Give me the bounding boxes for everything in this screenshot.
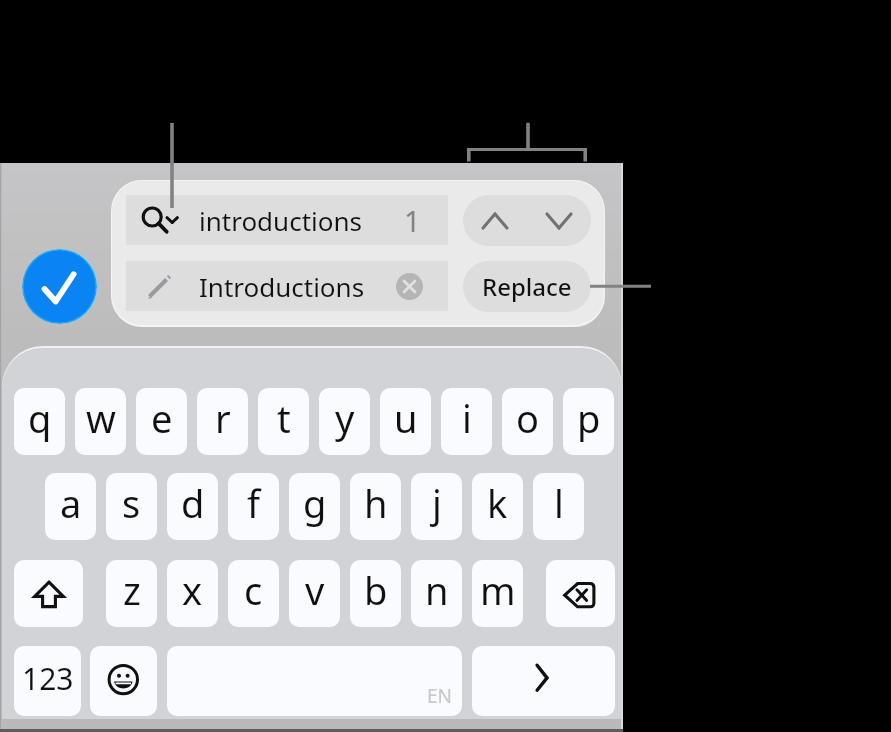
staticText: m	[480, 564, 516, 616]
button[interactable]: g	[289, 473, 340, 540]
staticText: b	[364, 564, 388, 616]
button[interactable]: Emoji	[90, 646, 157, 716]
button[interactable]: k	[472, 473, 523, 540]
button[interactable]: l	[533, 473, 584, 540]
staticText: w	[86, 392, 116, 444]
staticText: e	[151, 392, 173, 444]
button[interactable]: Next	[527, 195, 591, 246]
staticText: q	[28, 392, 52, 444]
staticText: u	[394, 392, 418, 444]
staticText: j	[432, 477, 442, 529]
button[interactable]: f	[228, 473, 279, 540]
staticText: k	[487, 477, 508, 529]
button[interactable]: r	[197, 388, 248, 455]
staticText: EN	[427, 683, 453, 709]
button[interactable]: o	[502, 388, 553, 455]
button[interactable]: b	[350, 560, 401, 627]
button[interactable]: Shift	[14, 560, 83, 627]
staticText: r	[215, 392, 231, 444]
staticText: n	[425, 564, 449, 616]
staticText: x	[182, 564, 203, 616]
button[interactable]: j	[411, 473, 462, 540]
button[interactable]: c	[228, 560, 279, 627]
button[interactable]: z	[106, 560, 157, 627]
staticText: d	[181, 477, 205, 529]
staticText: y	[335, 392, 355, 444]
button[interactable]: y	[319, 388, 370, 455]
button[interactable]: Previous	[463, 195, 527, 246]
button[interactable]: e	[136, 388, 187, 455]
staticText: l	[554, 477, 564, 529]
staticText: o	[516, 392, 539, 444]
button[interactable]: q	[14, 388, 65, 455]
staticText: a	[60, 477, 82, 529]
button[interactable]: m	[472, 560, 523, 627]
staticText: Replace	[482, 270, 572, 303]
button[interactable]: p	[563, 388, 614, 455]
button[interactable]: Return	[472, 646, 615, 716]
button[interactable]: w	[75, 388, 126, 455]
staticText: 123	[22, 658, 74, 699]
button[interactable]: Backspace	[546, 560, 615, 627]
button[interactable]: v	[289, 560, 340, 627]
staticText: i	[462, 392, 472, 444]
button[interactable]: u	[380, 388, 431, 455]
staticText: z	[123, 564, 141, 616]
staticText: t	[277, 392, 291, 444]
staticText: h	[364, 477, 388, 529]
staticText: p	[577, 392, 601, 444]
staticText: Introductions	[199, 269, 365, 304]
staticText: f	[247, 477, 261, 529]
button[interactable]: s	[106, 473, 157, 540]
button[interactable]: a	[45, 473, 96, 540]
staticText: s	[122, 477, 141, 529]
staticText: g	[303, 477, 327, 529]
button[interactable]: i	[441, 388, 492, 455]
staticText: introductions	[199, 203, 362, 238]
button[interactable]: h	[350, 473, 401, 540]
staticText: 1	[404, 201, 421, 240]
button[interactable]: Done	[22, 249, 97, 324]
button[interactable]: t	[258, 388, 309, 455]
button[interactable]: Space	[167, 646, 462, 716]
button[interactable]: d	[167, 473, 218, 540]
staticText: v	[305, 564, 325, 616]
button[interactable]: introductions	[126, 195, 448, 245]
staticText: c	[244, 564, 263, 616]
button[interactable]: Introductions	[126, 261, 448, 311]
button[interactable]: n	[411, 560, 462, 627]
button[interactable]: Replace	[463, 261, 591, 312]
button[interactable]: Clear	[396, 273, 423, 300]
button[interactable]: Numbers	[14, 646, 81, 716]
button[interactable]: x	[167, 560, 218, 627]
